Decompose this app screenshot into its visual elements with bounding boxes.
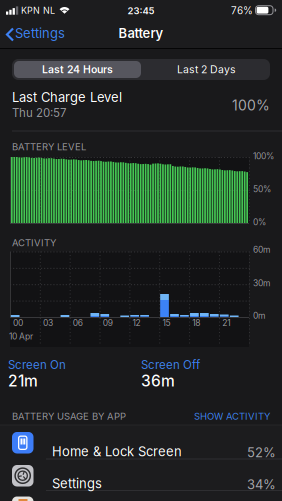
button[interactable]: Back to Settings [0,0,70,48]
staticText: 0m [253,310,265,321]
staticText: Last 2 Days [177,63,236,76]
staticText: Thu 20:57 [12,106,67,120]
staticText: 0% [253,217,266,227]
staticText: Settings [52,476,102,491]
button[interactable]: Last 2 Days [143,59,270,80]
staticText: BATTERY LEVEL [12,141,86,152]
staticText: BATTERY USAGE BY APP [12,410,126,422]
staticText: 52% [247,445,276,460]
staticText: 12 [132,318,140,328]
staticText: ACTIVITY [12,237,56,248]
staticText: 06 [73,318,83,328]
staticText: 76% [231,5,253,17]
staticText: 23:45 [127,5,154,16]
staticText: Battery [118,25,163,41]
staticText: 09 [103,318,113,328]
button[interactable]: Settings [0,458,282,490]
staticText: 21m [8,371,38,390]
staticText: 00 [13,318,23,328]
staticText: 10 Apr [9,331,33,342]
staticText: Screen Off [141,358,200,372]
button[interactable]: Home & Lock Screen [0,426,282,458]
staticText: 15 [162,318,170,328]
staticText: 03 [43,318,53,328]
staticText: 30m [253,278,270,288]
staticText: 36m [141,371,175,390]
staticText: Screen On [8,358,66,372]
staticText: 34% [247,477,276,492]
staticText: SHOW ACTIVITY [194,410,270,422]
staticText: 100% [232,97,270,114]
staticText: KPN NL [21,5,55,16]
staticText: 21 [222,318,230,328]
staticText: Home & Lock Screen [52,444,182,459]
button[interactable]: Last 24 Hours [14,61,141,78]
staticText: 60m [253,244,270,255]
staticText: Settings [15,25,65,41]
staticText: Last Charge Level [12,89,122,105]
staticText: 18 [192,318,200,328]
staticText: 50% [253,184,271,194]
staticText: 100% [253,151,274,161]
staticText: Last 24 Hours [42,63,113,76]
button[interactable]: SHOW ACTIVITY [0,0,270,11]
